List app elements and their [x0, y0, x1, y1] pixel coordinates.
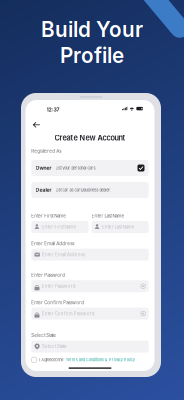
staticText: Enter Password: [31, 272, 65, 278]
staticText: Enter First Name: [41, 224, 76, 230]
staticText: I Agreed to the: [39, 357, 63, 362]
staticText: Enter Email Address: [42, 252, 85, 257]
staticText: Enter Confirm Password: [42, 311, 95, 316]
button[interactable]: I Agreed to the: [31, 356, 149, 363]
staticText: Enter Confirm Password: [31, 300, 84, 305]
staticText: List car as cars/business dealer: [55, 188, 110, 192]
staticText: Owner: [35, 165, 51, 171]
staticText: Registered As: [31, 149, 61, 154]
staticText: Dealer: [35, 187, 51, 193]
staticText: Enter Password: [42, 283, 76, 289]
button[interactable]: Back: [30, 118, 43, 131]
staticText: Enter Last Name: [102, 224, 135, 230]
staticText: Enter Last Name: [91, 213, 124, 219]
staticText: 12:37: [46, 106, 59, 113]
staticText: Create New Account: [54, 133, 125, 142]
staticText: Terms and Conditions & Privacy Policy: [66, 357, 135, 362]
staticText: Enter First Name: [31, 213, 66, 219]
staticText: Select State: [42, 344, 67, 349]
staticText: Profile: [60, 43, 124, 68]
button[interactable]: Owner: [31, 160, 149, 176]
staticText: Build Your: [41, 17, 143, 42]
button[interactable]: Dealer: [31, 182, 149, 198]
staticText: Select State: [31, 333, 56, 338]
staticText: List your personal cars: [55, 166, 95, 170]
staticText: Enter Email Address: [31, 241, 74, 246]
